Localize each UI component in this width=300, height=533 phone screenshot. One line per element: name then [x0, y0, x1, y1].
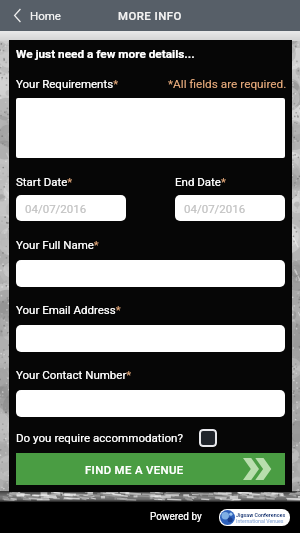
staticText: 04/07/2016	[25, 202, 87, 215]
button[interactable]: FIND ME A VENUE	[16, 453, 285, 485]
button[interactable]: End date	[175, 195, 285, 221]
staticText: MORE INFO	[118, 9, 182, 22]
button[interactable]: Your full name	[16, 260, 285, 287]
staticText: We just need a few more details...	[16, 47, 195, 61]
button[interactable]: Your contact number	[16, 390, 285, 417]
staticText: FIND ME A VENUE	[85, 463, 184, 476]
button[interactable]: Jigsaw Conferences International Venues	[219, 509, 290, 526]
staticText: Your Email Address*	[16, 303, 121, 316]
button[interactable]: Start date	[16, 195, 126, 221]
staticText: End Date*	[175, 175, 226, 188]
staticText: International Venues	[236, 518, 284, 524]
staticText: 04/07/2016	[184, 202, 246, 215]
staticText: Your Contact Number*	[16, 368, 132, 381]
staticText: Home	[30, 9, 61, 22]
staticText: *All fields are required.	[168, 77, 287, 91]
staticText: Do you require accommodation?	[16, 431, 183, 445]
staticText: Start Date*	[16, 175, 73, 188]
staticText: Powered by	[150, 511, 202, 523]
button[interactable]: Do you require accommodation?	[16, 428, 217, 447]
staticText: Your Requirements*	[16, 77, 119, 90]
button[interactable]: Your email address	[16, 325, 285, 352]
staticText: Your Full Name*	[16, 238, 99, 251]
staticText: Jigsaw Conferences	[236, 512, 286, 518]
button[interactable]: Home	[14, 0, 61, 31]
